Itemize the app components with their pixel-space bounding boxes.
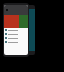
button[interactable] [4,28,28,32]
button[interactable] [4,32,28,36]
button[interactable] [4,40,28,44]
button[interactable] [4,36,28,40]
button[interactable]: Menu [4,5,28,15]
